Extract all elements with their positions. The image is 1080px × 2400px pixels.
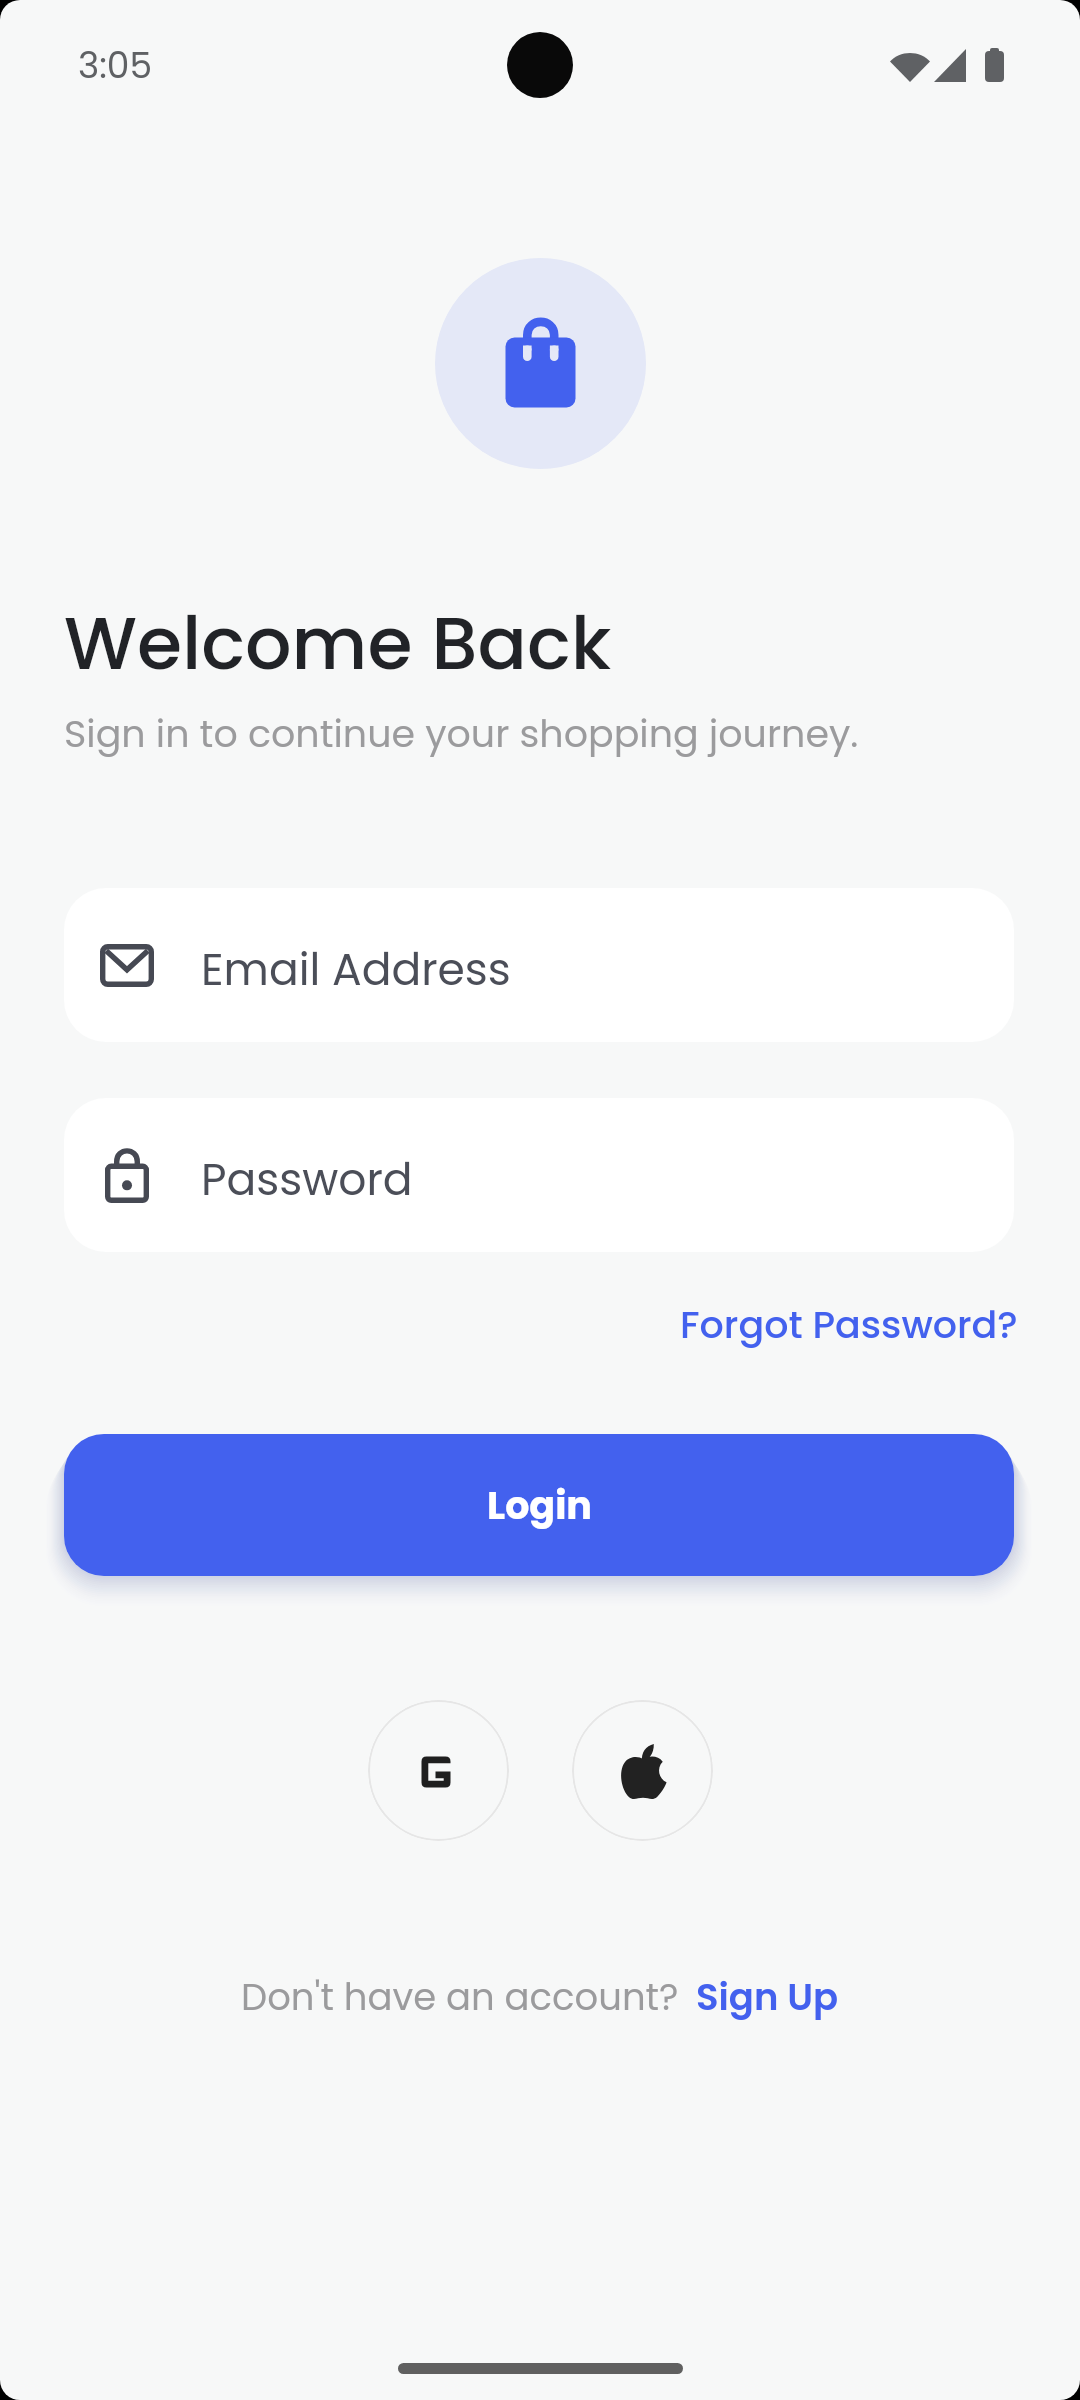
button[interactable]: Sign in with Apple (572, 1700, 713, 1841)
staticText: Login (487, 1479, 592, 1532)
button[interactable]: Email Address (64, 888, 1014, 1042)
button[interactable]: Sign in with Google (368, 1700, 509, 1841)
button[interactable]: Forgot Password? (678, 1292, 1018, 1357)
staticText: Email Address (201, 939, 511, 1001)
staticText: Sign in to continue your shopping journe… (64, 707, 859, 760)
staticText: Forgot Password? (680, 1298, 1018, 1351)
button[interactable]: Password (64, 1098, 1014, 1252)
staticText: Sign Up (696, 1971, 839, 2023)
button[interactable]: Login (64, 1434, 1014, 1576)
button[interactable]: Sign Up (696, 1971, 839, 2023)
staticText: Password (201, 1149, 413, 1211)
staticText: Don't have an account? (241, 1971, 679, 2023)
staticText: 3:05 (78, 40, 153, 90)
staticText: Welcome Back (64, 592, 612, 694)
